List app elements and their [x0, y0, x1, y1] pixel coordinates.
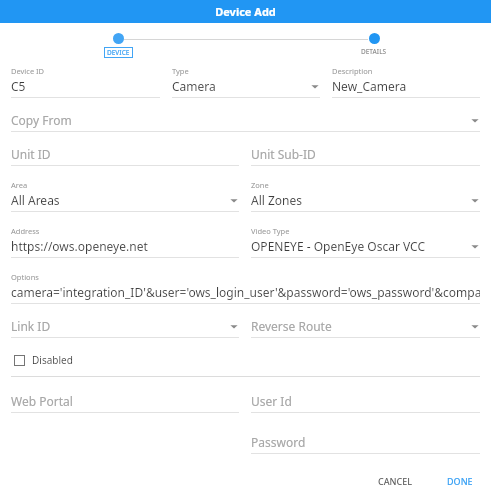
- staticText: CANCEL: [378, 475, 413, 487]
- staticText: Link ID: [11, 318, 51, 334]
- staticText: Unit ID: [11, 146, 51, 162]
- staticText: DEVICE: [107, 48, 130, 57]
- button[interactable]: Type: [172, 66, 320, 98]
- staticText: Options: [11, 272, 39, 282]
- staticText: Unit Sub-ID: [251, 146, 316, 162]
- button[interactable]: Description: [332, 66, 480, 98]
- button[interactable]: Area: [11, 180, 239, 212]
- staticText: Disabled: [32, 353, 73, 367]
- staticText: Reverse Route: [251, 318, 332, 334]
- staticText: Camera: [172, 78, 216, 94]
- staticText: OPENEYE - OpenEye Oscar VCC: [251, 238, 425, 254]
- staticText: Address: [11, 226, 40, 236]
- staticText: https://ows.openeye.net: [11, 238, 148, 254]
- button[interactable]: DONE: [439, 471, 481, 491]
- staticText: Device Add: [215, 4, 276, 19]
- staticText: C5: [11, 78, 26, 94]
- button[interactable]: Zone: [251, 180, 480, 212]
- staticText: All Zones: [251, 192, 303, 208]
- button[interactable]: Password: [251, 434, 480, 454]
- button[interactable]: Web Portal: [11, 393, 239, 413]
- button[interactable]: Options: [11, 272, 480, 304]
- staticText: Device ID: [11, 66, 45, 76]
- button[interactable]: Unit Sub-ID: [251, 146, 480, 166]
- button[interactable]: Device ID: [11, 66, 160, 98]
- staticText: DONE: [447, 475, 473, 487]
- staticText: camera='integration_ID'&user='ows_login_…: [11, 284, 480, 300]
- staticText: Zone: [251, 180, 269, 190]
- button[interactable]: Disabled: [14, 353, 73, 367]
- button[interactable]: Reverse Route: [251, 318, 480, 338]
- staticText: Web Portal: [11, 393, 73, 409]
- button[interactable]: CANCEL: [370, 471, 421, 491]
- staticText: Video Type: [251, 226, 290, 236]
- button[interactable]: Link ID: [11, 318, 239, 338]
- button[interactable]: Copy From: [11, 112, 480, 132]
- button[interactable]: Video Type: [251, 226, 480, 258]
- staticText: DETAILS: [361, 47, 387, 56]
- staticText: Copy From: [11, 112, 72, 128]
- button[interactable]: Address: [11, 226, 239, 258]
- button[interactable]: DETAILS: [361, 33, 387, 56]
- staticText: Password: [251, 434, 306, 450]
- staticText: All Areas: [11, 192, 60, 208]
- staticText: Description: [332, 66, 373, 76]
- button[interactable]: User Id: [251, 393, 480, 413]
- staticText: User Id: [251, 393, 292, 409]
- staticText: Area: [11, 180, 28, 190]
- staticText: New_Camera: [332, 78, 407, 94]
- staticText: Type: [172, 66, 189, 76]
- button[interactable]: DEVICE: [104, 33, 133, 58]
- button[interactable]: Unit ID: [11, 146, 239, 166]
